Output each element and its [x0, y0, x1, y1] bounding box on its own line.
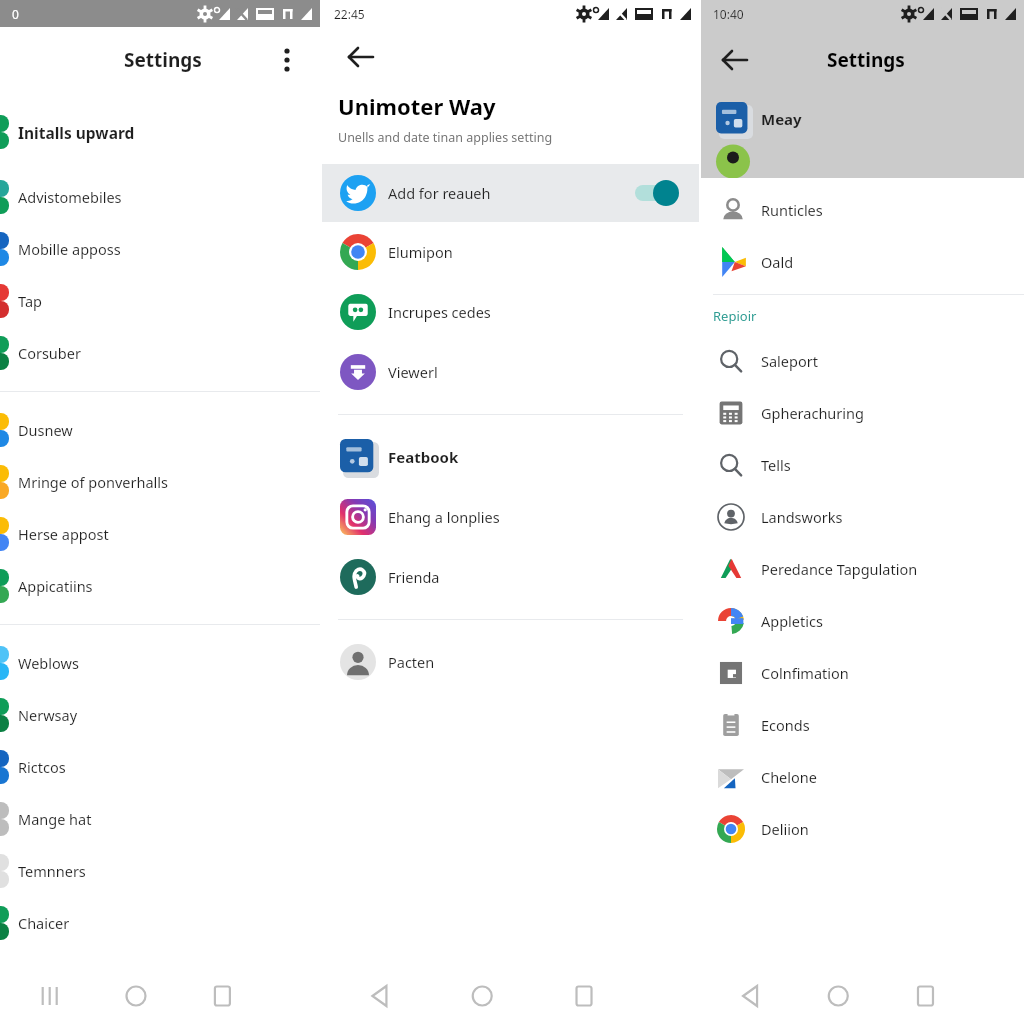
staticText: Repioir	[713, 307, 757, 325]
button[interactable]: Ehang a lonplies	[322, 487, 699, 547]
staticText: Frienda	[388, 567, 440, 587]
staticText: Weblows	[18, 653, 79, 673]
button[interactable]: Econds	[701, 699, 1024, 751]
staticText: Tells	[761, 455, 791, 475]
button[interactable]: Viewerl	[322, 342, 699, 402]
staticText: Temnners	[18, 861, 86, 881]
button[interactable]: Incrupes cedes	[322, 282, 699, 342]
button[interactable]: Back	[336, 33, 384, 81]
staticText: Chaicer	[18, 913, 70, 933]
button[interactable]: Back	[711, 37, 757, 83]
button[interactable]: Dusnew	[0, 404, 320, 456]
button[interactable]: Landsworks	[701, 491, 1024, 543]
staticText: Meay	[761, 109, 802, 129]
button[interactable]: Rictcos	[0, 741, 320, 793]
staticText: Tap	[18, 291, 42, 311]
button[interactable]: Pacten	[322, 632, 699, 692]
staticText: Landsworks	[761, 507, 843, 527]
button[interactable]: Appicatiins	[0, 560, 320, 612]
button[interactable]: Nerwsay	[0, 689, 320, 741]
button[interactable]: Mobille apposs	[0, 223, 320, 275]
button[interactable]: Colnfimation	[701, 647, 1024, 699]
staticText: Ehang a lonplies	[388, 507, 500, 527]
staticText: Gpherachuring	[761, 403, 864, 423]
button[interactable]: Saleport	[701, 335, 1024, 387]
staticText: Econds	[761, 715, 810, 735]
button[interactable]: Meay	[701, 93, 1024, 145]
staticText: Unells and date tinan applies setting	[338, 129, 553, 146]
staticText: Add for reaueh	[388, 183, 491, 203]
staticText: 22:45	[334, 6, 365, 22]
button[interactable]: Herse appost	[0, 508, 320, 560]
button[interactable]: Advistomebiles	[0, 171, 320, 223]
staticText: Mange hat	[18, 809, 92, 829]
staticText: Runticles	[761, 200, 823, 220]
button[interactable]: More options	[270, 43, 304, 77]
staticText: Appletics	[761, 611, 823, 631]
button[interactable]: Peredance Tapgulation	[701, 543, 1024, 595]
staticText: Elumipon	[388, 242, 453, 262]
button[interactable]: Weblows	[0, 637, 320, 689]
button[interactable]	[701, 145, 1024, 178]
staticText: Deliion	[761, 819, 809, 839]
staticText: Chelone	[761, 767, 817, 787]
staticText: Appicatiins	[18, 576, 93, 596]
staticText: Incrupes cedes	[388, 302, 491, 322]
button[interactable]: Mringe of ponverhalls	[0, 456, 320, 508]
staticText: Nerwsay	[18, 705, 78, 725]
button[interactable]: Add for reaueh	[322, 164, 699, 222]
button[interactable]: Mange hat	[0, 793, 320, 845]
staticText: Saleport	[761, 351, 818, 371]
button[interactable]: Deliion	[701, 803, 1024, 855]
button[interactable]: Tap	[0, 275, 320, 327]
button[interactable]: Runticles	[701, 184, 1024, 236]
staticText: Viewerl	[388, 362, 438, 382]
button[interactable]: Elumipon	[322, 222, 699, 282]
staticText: Dusnew	[18, 420, 73, 440]
staticText: Advistomebiles	[18, 187, 122, 207]
staticText: Corsuber	[18, 343, 81, 363]
staticText: Mringe of ponverhalls	[18, 472, 168, 492]
button[interactable]: Frienda	[322, 547, 699, 607]
staticText: 0	[12, 6, 19, 22]
button[interactable]: Oald	[701, 236, 1024, 288]
button[interactable]: Corsuber	[0, 327, 320, 379]
staticText: Pacten	[388, 652, 435, 672]
staticText: Unimoter Way	[338, 91, 496, 121]
staticText: Initalls upward	[18, 122, 135, 143]
button[interactable]: Chaicer	[0, 897, 320, 949]
staticText: Colnfimation	[761, 663, 849, 683]
button[interactable]: Initalls upward	[0, 107, 320, 157]
button[interactable]: Featbook	[322, 427, 699, 487]
button[interactable]: Chelone	[701, 751, 1024, 803]
staticText: 10:40	[713, 6, 744, 22]
staticText: Herse appost	[18, 524, 109, 544]
staticText: Oald	[761, 252, 794, 272]
staticText: Rictcos	[18, 757, 66, 777]
button[interactable]: Gpherachuring	[701, 387, 1024, 439]
button[interactable]: Temnners	[0, 845, 320, 897]
staticText: Settings	[827, 47, 905, 73]
staticText: Peredance Tapgulation	[761, 559, 918, 579]
button[interactable]: Appletics	[701, 595, 1024, 647]
staticText: Settings	[124, 47, 202, 73]
staticText: Mobille apposs	[18, 239, 121, 259]
staticText: Featbook	[388, 447, 459, 467]
button[interactable]: Tells	[701, 439, 1024, 491]
